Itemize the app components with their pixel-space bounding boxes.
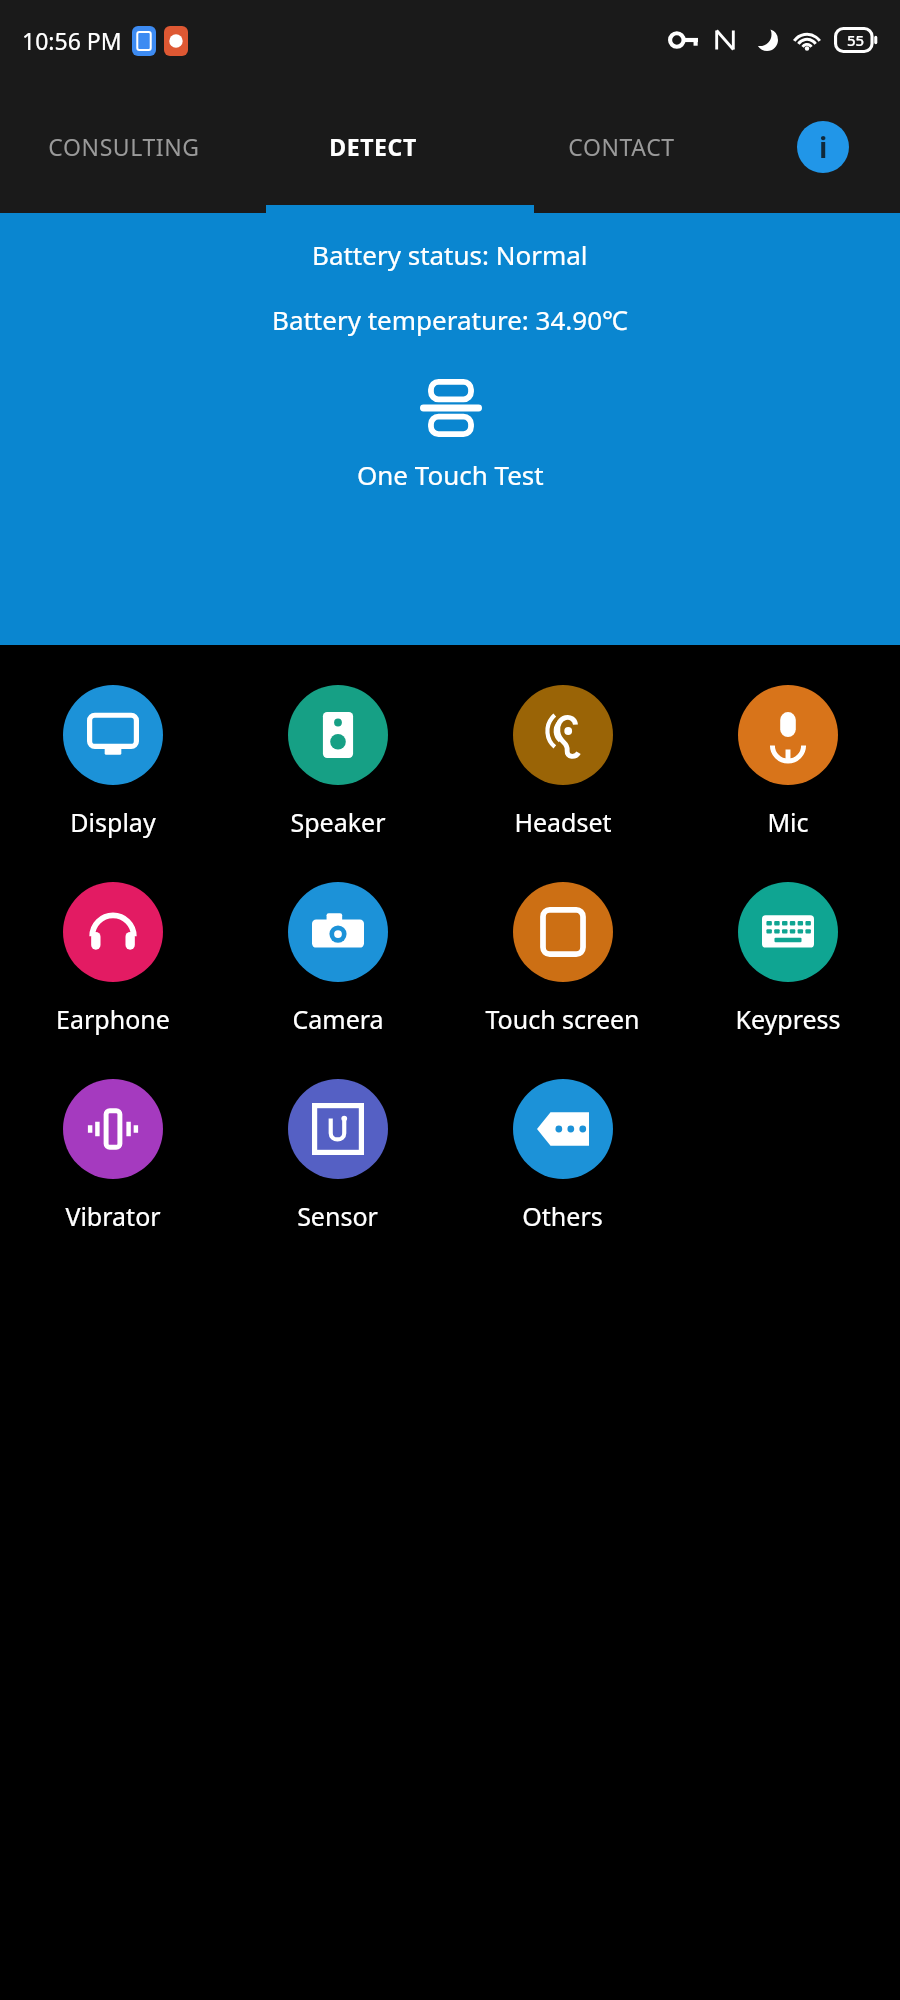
staticText: 55: [847, 30, 865, 50]
button[interactable]: Headset: [450, 681, 675, 843]
staticText: Vibrator: [65, 1199, 161, 1233]
staticText: Keypress: [735, 1002, 841, 1036]
staticText: Camera: [292, 1002, 384, 1036]
staticText: Headset: [514, 805, 612, 839]
button[interactable]: Sensor: [225, 1075, 450, 1237]
button[interactable]: Camera: [225, 878, 450, 1040]
staticText: CONTACT: [568, 131, 675, 162]
button[interactable]: Mic: [675, 681, 900, 843]
button[interactable]: Touch screen: [450, 878, 675, 1040]
staticText: One Touch Test: [357, 457, 544, 492]
staticText: i: [819, 128, 828, 166]
staticText: Sensor: [297, 1199, 378, 1233]
staticText: Earphone: [56, 1002, 170, 1036]
button[interactable]: Earphone: [0, 878, 225, 1040]
button[interactable]: Display: [0, 681, 225, 843]
button[interactable]: Keypress: [675, 878, 900, 1040]
staticText: Battery temperature: 34.90℃: [272, 302, 628, 337]
button[interactable]: Speaker: [225, 681, 450, 843]
button[interactable]: One Touch Test: [317, 375, 584, 496]
button[interactable]: DETECT: [248, 80, 497, 213]
button[interactable]: Others: [450, 1075, 675, 1237]
staticText: 10:56 PM: [22, 25, 122, 56]
staticText: Others: [522, 1199, 603, 1233]
staticText: CONSULTING: [48, 131, 200, 162]
button[interactable]: Vibrator: [0, 1075, 225, 1237]
staticText: Mic: [767, 805, 809, 839]
button[interactable]: CONTACT: [497, 80, 746, 213]
staticText: Battery status: Normal: [312, 237, 588, 272]
button[interactable]: CONSULTING: [0, 80, 248, 213]
button[interactable]: Info: [746, 80, 900, 213]
staticText: Touch screen: [485, 1002, 640, 1036]
staticText: DETECT: [329, 131, 417, 162]
staticText: Speaker: [290, 805, 386, 839]
staticText: Display: [70, 805, 156, 839]
